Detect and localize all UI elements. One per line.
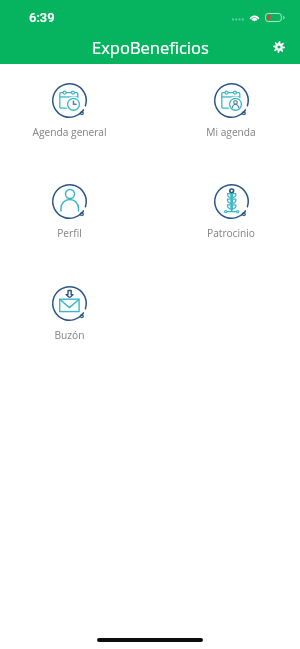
button[interactable]: Agenda general bbox=[13, 76, 125, 139]
button[interactable]: Buzón bbox=[13, 279, 125, 342]
staticText: Mi agenda bbox=[206, 125, 256, 139]
button[interactable]: Patrocinio bbox=[175, 177, 287, 240]
button[interactable]: Mi agenda bbox=[175, 76, 287, 139]
button[interactable]: Perfil bbox=[13, 177, 125, 240]
staticText: Buzón bbox=[54, 328, 85, 342]
staticText: Agenda general bbox=[32, 125, 107, 139]
staticText: Patrocinio bbox=[207, 226, 255, 240]
staticText: 6:39 bbox=[29, 10, 55, 25]
button[interactable]: Settings bbox=[262, 30, 296, 64]
staticText: Perfil bbox=[57, 226, 82, 240]
staticText: ExpoBeneficios bbox=[92, 36, 209, 58]
